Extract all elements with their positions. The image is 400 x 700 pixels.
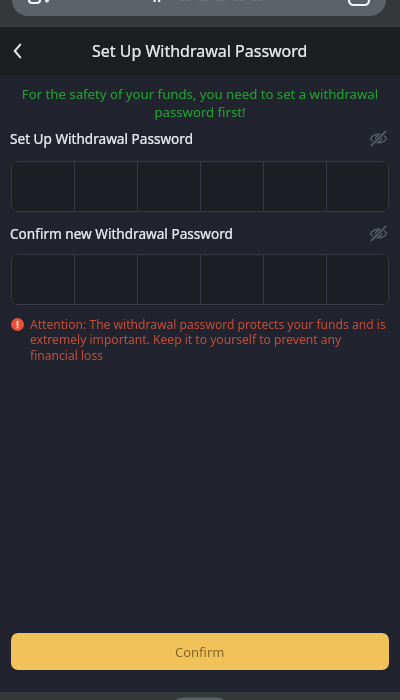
button[interactable]: Show password xyxy=(366,127,390,149)
button[interactable] xyxy=(327,161,389,212)
button[interactable] xyxy=(75,254,137,305)
button[interactable] xyxy=(75,161,137,212)
button[interactable] xyxy=(11,161,74,212)
button[interactable] xyxy=(138,161,200,212)
staticText: For the safety of your funds, you need t… xyxy=(12,85,388,121)
button[interactable] xyxy=(327,254,389,305)
staticText: Confirm new Withdrawal Password xyxy=(10,224,233,243)
button[interactable]: Confirm xyxy=(11,633,389,670)
button[interactable] xyxy=(201,161,263,212)
button[interactable] xyxy=(264,254,326,305)
button[interactable]: Show password xyxy=(366,222,390,244)
staticText: Attention: The withdrawal password prote… xyxy=(30,316,386,364)
button[interactable] xyxy=(264,161,326,212)
staticText: Confirm xyxy=(175,643,225,661)
button[interactable]: Back xyxy=(0,33,36,69)
button[interactable] xyxy=(138,254,200,305)
button[interactable] xyxy=(201,254,263,305)
staticText: Set Up Withdrawal Password xyxy=(92,40,308,62)
staticText: Set Up Withdrawal Password xyxy=(10,129,194,148)
button[interactable] xyxy=(11,254,74,305)
